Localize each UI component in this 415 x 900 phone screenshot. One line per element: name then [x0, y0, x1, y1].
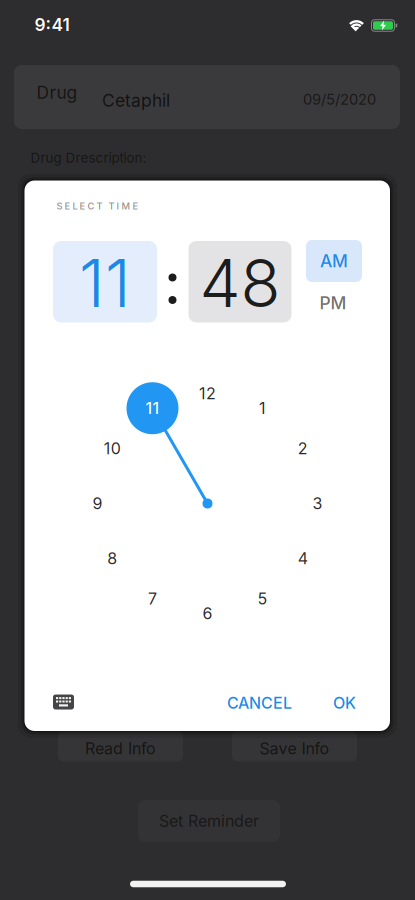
- staticText: 48: [199, 245, 280, 322]
- staticText: Drug: [36, 82, 77, 103]
- button[interactable]: Switch to keyboard input: [53, 694, 74, 709]
- button[interactable]: 48: [188, 241, 291, 322]
- staticText: 6: [202, 604, 212, 623]
- button[interactable]: Save Info: [232, 730, 357, 761]
- staticText: Cetaphil: [102, 90, 170, 111]
- staticText: Set Reminder: [159, 812, 259, 830]
- staticText: 11: [79, 245, 131, 322]
- staticText: 3: [312, 494, 322, 513]
- staticText: 9: [92, 494, 102, 513]
- staticText: 9:41: [34, 14, 69, 35]
- staticText: 10: [104, 439, 121, 458]
- staticText: 09/5/2020: [303, 91, 376, 108]
- staticText: AM: [320, 251, 348, 271]
- staticText: Read Info: [85, 739, 156, 758]
- staticText: CANCEL: [227, 694, 292, 712]
- staticText: Drug Drescription:: [30, 150, 146, 166]
- button[interactable]: CANCEL: [219, 686, 300, 720]
- staticText: 7: [148, 589, 157, 608]
- button[interactable]: OK: [325, 686, 364, 720]
- staticText: 5: [257, 589, 267, 608]
- button[interactable]: Read Info: [58, 730, 183, 761]
- staticText: 2: [298, 439, 308, 458]
- staticText: 4: [298, 549, 308, 568]
- button[interactable]: AM: [306, 240, 362, 282]
- button[interactable]: PM: [305, 282, 361, 324]
- button[interactable]: 11: [53, 241, 157, 322]
- staticText: SELECT TIME: [57, 200, 139, 211]
- staticText: PM: [319, 293, 346, 313]
- staticText: Save Info: [259, 739, 329, 758]
- staticText: 11: [145, 399, 159, 418]
- staticText: 1: [259, 399, 266, 418]
- staticText: 8: [107, 549, 117, 568]
- button[interactable]: Set Reminder: [138, 800, 280, 842]
- staticText: OK: [333, 694, 356, 712]
- staticText: 11: [145, 399, 159, 418]
- staticText: 12: [199, 384, 216, 403]
